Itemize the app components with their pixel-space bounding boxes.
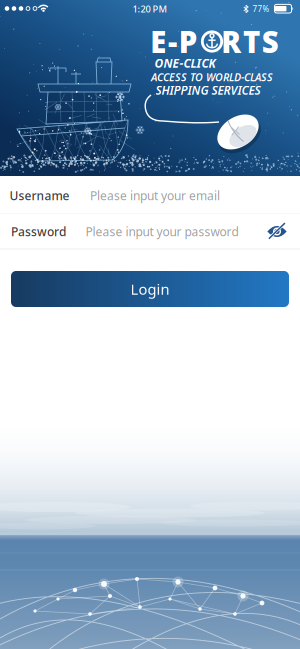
staticText: E-P [150, 22, 198, 61]
staticText: Password [11, 223, 66, 239]
staticText: 1:20 PM [132, 3, 167, 15]
staticText: 77% [252, 4, 269, 14]
staticText: Please input your password [85, 223, 238, 239]
staticText: Please input your email [90, 187, 220, 203]
button[interactable]: Password [0, 214, 254, 249]
staticText: SHIPPING SERVICES [155, 82, 260, 98]
staticText: ACCESS TO WORLD-CLASS [151, 70, 273, 84]
button[interactable]: Show password [254, 214, 300, 249]
staticText: ONE-CLICK [154, 55, 215, 71]
staticText: RTS [221, 22, 279, 61]
staticText: Login [130, 279, 169, 299]
button[interactable]: Username [0, 176, 300, 214]
staticText: Username [9, 187, 69, 203]
button[interactable]: Login [11, 271, 289, 307]
